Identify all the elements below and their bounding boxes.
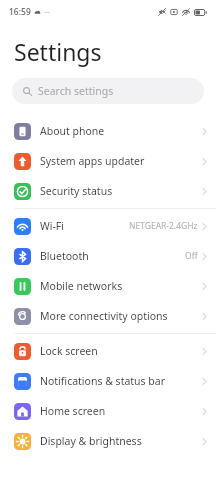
staticText: Settings <box>14 36 102 67</box>
button[interactable]: Notifications & status bar <box>0 366 216 396</box>
button[interactable]: Wi-Fi <box>0 211 216 241</box>
staticText: Mobile networks <box>40 279 123 293</box>
staticText: System apps updater <box>40 154 145 168</box>
staticText: Security status <box>40 184 113 198</box>
staticText: Display & brightness <box>40 434 142 448</box>
staticText: Lock screen <box>40 344 98 358</box>
button[interactable]: Bluetooth <box>0 241 216 271</box>
staticText: Home screen <box>40 404 106 418</box>
button[interactable]: Search settings <box>12 78 204 104</box>
staticText: Bluetooth <box>40 249 89 263</box>
staticText: Search settings <box>38 84 114 98</box>
staticText: NETGEAR-2.4GHz <box>129 220 198 232</box>
staticText: About phone <box>40 124 105 138</box>
staticText: Off <box>185 250 198 262</box>
button[interactable]: About phone <box>0 116 216 146</box>
button[interactable]: Lock screen <box>0 336 216 366</box>
button[interactable]: Security status <box>0 176 216 206</box>
button[interactable]: Home screen <box>0 396 216 426</box>
button[interactable]: Display & brightness <box>0 426 216 456</box>
staticText: 16:59 <box>9 6 31 18</box>
button[interactable]: More connectivity options <box>0 301 216 331</box>
staticText: More connectivity options <box>40 309 168 323</box>
button[interactable]: Mobile networks <box>0 271 216 301</box>
staticText: Wi-Fi <box>40 219 65 233</box>
button[interactable]: System apps updater <box>0 146 216 176</box>
staticText: Notifications & status bar <box>40 374 166 388</box>
